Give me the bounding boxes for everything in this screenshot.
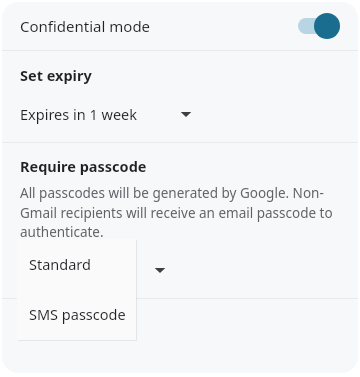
button[interactable]: SMS passcode (17, 289, 136, 339)
staticText: Confidential mode (20, 16, 151, 36)
staticText: All passcodes will be generated by Googl… (20, 184, 340, 241)
staticText: SMS passcode (29, 304, 126, 324)
staticText: Learn more (45, 313, 119, 331)
button[interactable]: Learn more (20, 311, 119, 333)
staticText: Set expiry (20, 65, 92, 85)
button[interactable]: Confidential mode toggle (298, 13, 340, 39)
button[interactable]: Standard (20, 255, 166, 285)
staticText: Standard (20, 260, 82, 280)
button[interactable]: Standard (17, 239, 136, 289)
button[interactable]: Expires in 1 week (20, 99, 192, 129)
staticText: Expires in 1 week (20, 104, 138, 124)
staticText: Require passcode (20, 156, 147, 176)
button[interactable]: Confidential mode (2, 2, 358, 50)
staticText: Standard (29, 254, 91, 274)
